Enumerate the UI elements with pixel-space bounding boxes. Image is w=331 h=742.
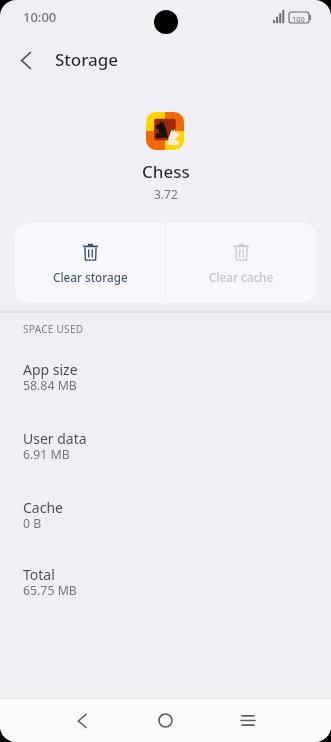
staticText: 6.91 MB [23,446,70,463]
button[interactable]: Back [8,38,44,82]
staticText: Cache [23,498,63,517]
staticText: Clear storage [53,269,128,285]
staticText: 0 B [23,515,42,532]
staticText: Storage [55,48,119,71]
staticText: 65.75 MB [23,582,77,599]
staticText: Clear cache [209,269,274,285]
staticText: 3.72 [154,186,178,202]
button[interactable]: Back [60,699,104,742]
button[interactable]: Clear cache [166,223,316,303]
staticText: App size [23,360,78,379]
button[interactable]: Clear storage [15,223,165,303]
staticText: Total [23,565,55,584]
staticText: 58.84 MB [23,377,77,394]
staticText: Chess [142,160,190,183]
button[interactable]: Home [143,699,187,742]
staticText: 10:00 [23,8,57,26]
staticText: User data [23,429,87,448]
staticText: SPACE USED [23,322,84,336]
staticText: 100 [292,14,305,24]
button[interactable]: Recent apps [226,699,270,742]
